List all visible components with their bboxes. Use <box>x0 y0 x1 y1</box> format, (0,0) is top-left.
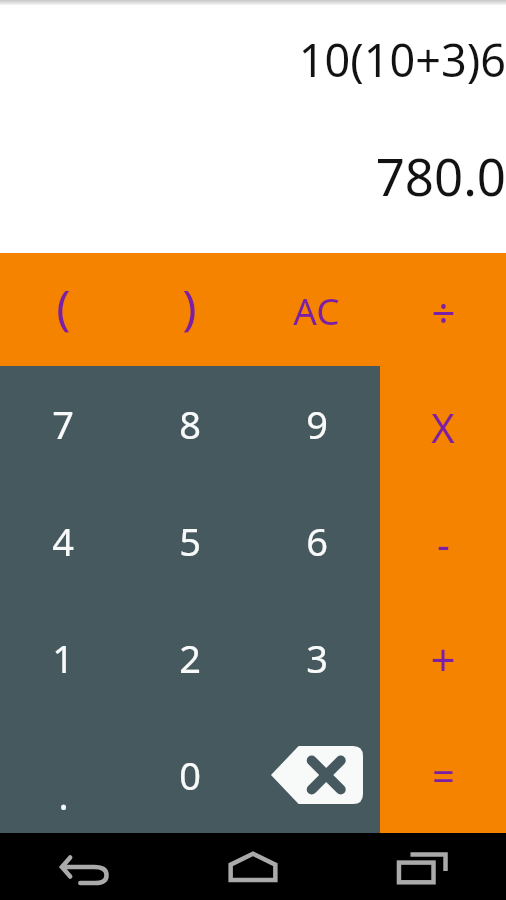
staticText: = <box>432 748 455 802</box>
staticText: 9 <box>306 398 328 450</box>
button[interactable]: ) <box>126 253 253 366</box>
button[interactable]: ( <box>0 253 126 366</box>
button[interactable]: 4 <box>0 482 126 599</box>
button[interactable]: Home <box>168 833 337 900</box>
staticText: 0 <box>179 749 201 801</box>
button[interactable]: ÷ <box>380 253 506 369</box>
staticText: AC <box>293 285 340 335</box>
button[interactable]: + <box>380 601 506 717</box>
staticText: 5 <box>179 515 201 567</box>
button[interactable]: AC <box>253 253 380 366</box>
staticText: 1 <box>52 632 74 684</box>
button[interactable]: 5 <box>126 482 253 599</box>
staticText: 780.0 <box>375 141 506 210</box>
button[interactable]: = <box>380 717 506 833</box>
staticText: 3 <box>306 632 328 684</box>
staticText: 10(10+3)6 <box>298 29 506 90</box>
staticText: ÷ <box>431 283 456 340</box>
staticText: 2 <box>179 632 201 684</box>
button[interactable]: - <box>380 485 506 601</box>
button[interactable]: 6 <box>253 482 380 599</box>
button[interactable]: Recents <box>337 833 506 900</box>
button[interactable]: 9 <box>253 366 380 482</box>
button[interactable]: X <box>380 369 506 485</box>
staticText: 4 <box>52 515 74 567</box>
staticText: + <box>430 629 456 689</box>
staticText: X <box>431 400 455 454</box>
button[interactable]: 0 <box>126 716 253 833</box>
button[interactable]: 7 <box>0 366 126 482</box>
button[interactable]: Backspace <box>253 716 380 833</box>
staticText: 7 <box>52 398 74 450</box>
button[interactable]: 3 <box>253 599 380 716</box>
button[interactable]: 8 <box>126 366 253 482</box>
staticText: ) <box>182 274 197 339</box>
button[interactable]: 1 <box>0 599 126 716</box>
staticText: 6 <box>306 515 328 567</box>
button[interactable]: 2 <box>126 599 253 716</box>
staticText: . <box>58 769 69 821</box>
staticText: - <box>437 516 450 570</box>
button[interactable]: . <box>0 716 126 833</box>
button[interactable]: Back <box>0 833 168 900</box>
staticText: 8 <box>179 398 201 450</box>
staticText: ( <box>56 274 71 339</box>
